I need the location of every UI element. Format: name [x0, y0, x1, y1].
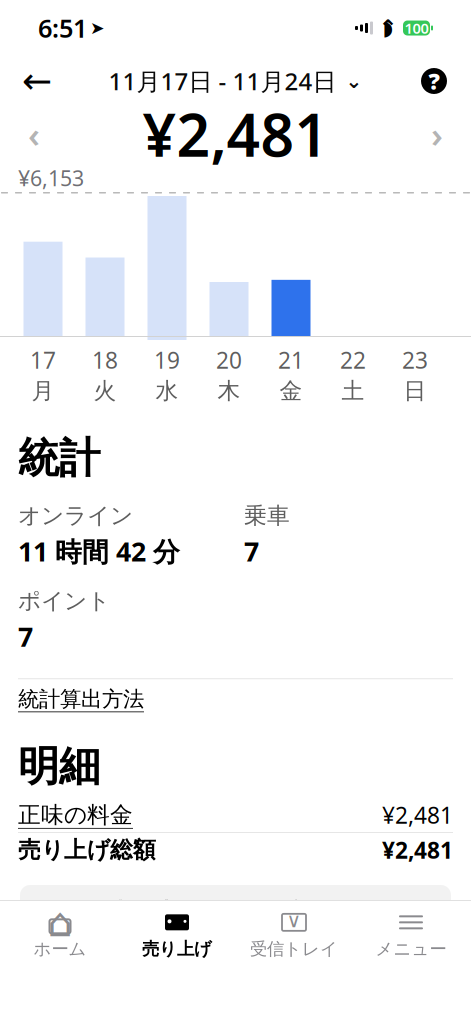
staticText: ⌄ [345, 70, 362, 92]
staticText: 6:51 [38, 11, 87, 45]
button[interactable]: 売り上げ状況を確認する [0, 885, 471, 939]
staticText: ¥2,481 [382, 835, 453, 865]
staticText: 木 [217, 377, 240, 405]
staticText: 17 [30, 345, 56, 375]
staticText: ? [428, 66, 439, 96]
staticText: 20 [216, 345, 242, 375]
staticText: ◗ [382, 17, 393, 39]
button[interactable]: 売り上げ [118, 909, 235, 961]
staticText: 11 時間 42 分 [18, 534, 180, 569]
staticText: オンライン [18, 502, 133, 529]
button[interactable]: 統計算出方法 [0, 679, 471, 719]
staticText: 売り上げ [142, 938, 212, 960]
button[interactable]: ヘルプ [411, 58, 457, 104]
button[interactable]: ⌂ [1, 909, 118, 961]
button[interactable]: メニュー [352, 909, 469, 961]
staticText: ∨ [286, 909, 301, 932]
staticText: 統計算出方法 [18, 686, 144, 712]
button[interactable]: 戻る [14, 58, 60, 104]
staticText: 売り上げ総額 [18, 836, 156, 864]
staticText: 明細 [18, 741, 100, 792]
staticText: 土 [341, 377, 364, 405]
staticText: 月 [31, 377, 54, 405]
staticText: 日 [403, 377, 426, 405]
staticText: 乗車 [244, 502, 290, 529]
staticText: 19 [154, 345, 180, 375]
staticText: ポイント [18, 587, 110, 615]
staticText: 100 [404, 18, 428, 38]
button[interactable]: 正味の料金 [0, 798, 471, 832]
button[interactable]: 11月17日 - 11月24日 [102, 58, 368, 104]
staticText: 21 [278, 345, 304, 375]
staticText: 統計 [18, 433, 100, 484]
button[interactable]: ∨ [235, 909, 352, 961]
staticText: メニュー [375, 938, 446, 960]
staticText: ¥6,153 [18, 164, 84, 192]
staticText: 7 [18, 619, 33, 654]
staticText: 水 [155, 377, 178, 405]
staticText: 正味の料金 [18, 801, 133, 829]
staticText: ホーム [33, 938, 86, 960]
staticText: 23 [402, 345, 428, 375]
staticText: ¥2,481 [142, 95, 328, 173]
staticText: ¥2,481 [382, 800, 453, 830]
button[interactable]: 次の週 [415, 108, 459, 160]
staticText: 7 [244, 534, 259, 569]
staticText: ⌂ [47, 900, 72, 945]
button[interactable]: 前の週 [12, 108, 56, 160]
staticText: ⌃ [378, 15, 397, 41]
staticText: ← [22, 61, 52, 101]
staticText: 11月17日 - 11月24日 [108, 65, 336, 97]
staticText: ‹ [28, 111, 40, 157]
staticText: 金 [279, 377, 302, 405]
staticText: 22 [340, 345, 366, 375]
staticText: 18 [92, 345, 118, 375]
staticText: › [431, 111, 443, 157]
staticText: 売り上げ状況を確認する [109, 898, 362, 926]
staticText: ➤ [90, 18, 105, 38]
staticText: 火 [93, 377, 116, 405]
staticText: 受信トレイ [250, 938, 338, 960]
